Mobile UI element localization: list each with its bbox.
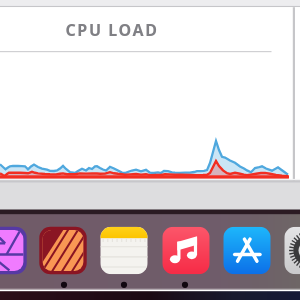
button[interactable] <box>0 0 300 300</box>
